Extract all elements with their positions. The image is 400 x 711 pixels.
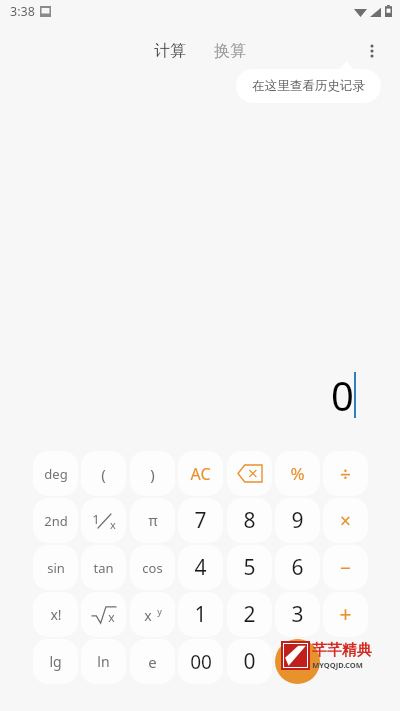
button[interactable]: 计算: [146, 35, 194, 67]
staticText: −: [340, 555, 351, 581]
staticText: 6: [291, 553, 304, 582]
button[interactable]: 1: [81, 498, 126, 543]
staticText: 在这里查看历史记录: [252, 78, 365, 94]
button[interactable]: π: [130, 498, 175, 543]
button[interactable]: ×: [323, 498, 368, 543]
button[interactable]: AC: [178, 451, 223, 496]
button[interactable]: 6: [275, 545, 320, 590]
staticText: +: [339, 600, 352, 629]
staticText: 1: [194, 600, 207, 629]
staticText: 计算: [154, 41, 186, 61]
staticText: x!: [50, 605, 62, 624]
button[interactable]: 8: [227, 498, 272, 543]
staticText: 9: [291, 506, 304, 535]
staticText: x: [108, 609, 115, 625]
button[interactable]: %: [275, 451, 320, 496]
button[interactable]: Equals: [275, 639, 320, 684]
staticText: (: [101, 464, 106, 484]
staticText: y: [157, 605, 162, 617]
staticText: ×: [340, 508, 351, 534]
staticText: 4: [194, 553, 207, 582]
button[interactable]: 0: [227, 639, 272, 684]
button[interactable]: ln: [81, 639, 126, 684]
button[interactable]: 9: [275, 498, 320, 543]
staticText: 1: [92, 510, 100, 528]
button[interactable]: +: [323, 592, 368, 637]
staticText: lg: [49, 652, 62, 671]
button[interactable]: Backspace: [227, 451, 272, 496]
button[interactable]: 7: [178, 498, 223, 543]
staticText: tan: [93, 559, 114, 577]
button[interactable]: 3: [275, 592, 320, 637]
staticText: 0: [331, 368, 354, 422]
staticText: x: [144, 606, 152, 624]
button[interactable]: 00: [178, 639, 223, 684]
button[interactable]: x: [81, 592, 126, 637]
button[interactable]: 2nd: [33, 498, 78, 543]
button[interactable]: (: [81, 451, 126, 496]
staticText: 2: [243, 600, 256, 629]
staticText: 2nd: [44, 512, 68, 530]
staticText: 芊芊精典: [312, 641, 372, 660]
staticText: x: [110, 517, 116, 532]
button[interactable]: 5: [227, 545, 272, 590]
button[interactable]: 换算: [206, 35, 254, 67]
staticText: 00: [190, 649, 212, 675]
button[interactable]: cos: [130, 545, 175, 590]
staticText: sin: [47, 559, 65, 577]
button[interactable]: lg: [33, 639, 78, 684]
other: Backspace: [238, 465, 262, 482]
staticText: 7: [194, 506, 207, 535]
staticText: deg: [44, 465, 68, 483]
button[interactable]: 1: [178, 592, 223, 637]
button[interactable]: e: [130, 639, 175, 684]
staticText: ): [150, 464, 155, 484]
staticText: 换算: [214, 41, 246, 61]
staticText: 8: [243, 506, 256, 535]
button[interactable]: 2: [227, 592, 272, 637]
staticText: MYQQJD.COM: [312, 660, 363, 670]
staticText: 3: [291, 600, 304, 629]
staticText: AC: [190, 463, 211, 485]
button[interactable]: More options: [352, 31, 392, 71]
staticText: e: [148, 652, 157, 672]
staticText: 0: [243, 647, 256, 676]
staticText: π: [148, 511, 158, 530]
staticText: 5: [243, 553, 256, 582]
staticText: cos: [142, 559, 163, 577]
button[interactable]: x!: [33, 592, 78, 637]
button[interactable]: sin: [33, 545, 78, 590]
button[interactable]: 4: [178, 545, 223, 590]
button[interactable]: ): [130, 451, 175, 496]
button[interactable]: 在这里查看历史记录: [236, 69, 381, 103]
staticText: 3:38: [10, 3, 35, 20]
button[interactable]: x: [130, 592, 175, 637]
button[interactable]: tan: [81, 545, 126, 590]
button[interactable]: ÷: [323, 451, 368, 496]
button[interactable]: deg: [33, 451, 78, 496]
button[interactable]: −: [323, 545, 368, 590]
staticText: %: [290, 462, 305, 485]
staticText: ÷: [340, 461, 351, 487]
staticText: ln: [97, 652, 110, 671]
